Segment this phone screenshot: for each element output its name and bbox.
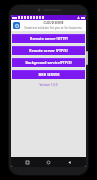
staticText: Version 1.0.0 [11, 83, 86, 87]
button[interactable]: Recent apps [23, 158, 32, 167]
staticText: Remote server [HTTP] [30, 36, 68, 41]
button[interactable]: CLOUD SERVE [13, 20, 84, 31]
staticText: SMB SERVER [38, 72, 60, 77]
staticText: CLOUD SERVE [43, 21, 64, 25]
staticText: Remote server [FTP/S] [29, 48, 68, 53]
staticText: Background service[FTP/S] [25, 60, 72, 65]
button[interactable]: Background service[FTP/S] [12, 58, 85, 67]
button[interactable]: Remote server [HTTP] [12, 34, 85, 43]
staticText: Smartest solution for you or for busines… [24, 26, 82, 30]
button[interactable]: SMB SERVER [12, 70, 85, 79]
button[interactable]: Home [44, 158, 53, 167]
button[interactable]: Remote server [FTP/S] [12, 46, 85, 55]
button[interactable]: Back [65, 158, 74, 167]
